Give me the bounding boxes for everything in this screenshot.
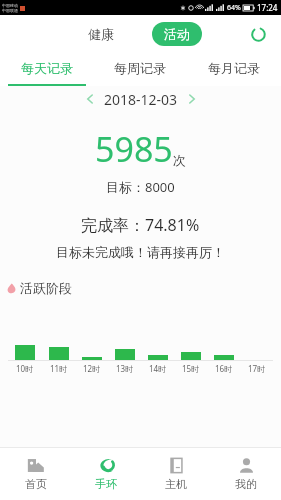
staticText: 5985 — [95, 126, 173, 172]
staticText: 目标：8000 — [106, 178, 175, 196]
staticText: 16时 — [215, 363, 233, 374]
staticText: 主机 — [165, 477, 187, 491]
staticText: 11时 — [50, 363, 68, 374]
staticText: 64% — [227, 3, 241, 13]
button[interactable]: 健康 — [84, 22, 118, 46]
staticText: 12时 — [83, 363, 101, 374]
staticText: 14时 — [149, 363, 167, 374]
button[interactable]: 每天记录 — [0, 52, 93, 84]
staticText: 手环 — [95, 477, 117, 491]
staticText: 次 — [173, 152, 186, 168]
staticText: 17时 — [248, 363, 266, 374]
staticText: 活跃阶段 — [20, 280, 72, 296]
staticText: 目标未完成哦！请再接再厉！ — [56, 244, 225, 260]
staticText: 我的 — [235, 477, 257, 491]
button[interactable]: Refresh — [247, 23, 269, 45]
staticText: 首页 — [25, 477, 47, 491]
staticText: 2018-12-03 — [104, 90, 178, 109]
button[interactable]: 活动 — [152, 22, 202, 46]
button[interactable]: 每月记录 — [187, 52, 281, 84]
staticText: 完成率：74.81% — [81, 214, 200, 236]
button[interactable]: 每周记录 — [93, 52, 187, 84]
button[interactable]: Next day — [182, 89, 202, 109]
button[interactable]: 首页 — [0, 452, 71, 496]
staticText: 每天记录 — [21, 60, 73, 76]
staticText: 每周记录 — [114, 60, 166, 76]
button[interactable]: 手环 — [71, 452, 141, 496]
staticText: 健康 — [88, 26, 114, 42]
staticText: 17:24 — [257, 2, 278, 13]
staticText: 活动 — [164, 26, 190, 42]
button[interactable]: 主机 — [141, 452, 211, 496]
staticText: 中国联通 — [2, 8, 18, 13]
button[interactable]: 我的 — [211, 452, 281, 496]
staticText: 13时 — [116, 363, 134, 374]
staticText: 15时 — [182, 363, 200, 374]
staticText: 中国移动 — [2, 3, 18, 8]
staticText: 10时 — [16, 363, 34, 374]
button[interactable]: Previous day — [80, 89, 100, 109]
staticText: 每月记录 — [208, 60, 260, 76]
